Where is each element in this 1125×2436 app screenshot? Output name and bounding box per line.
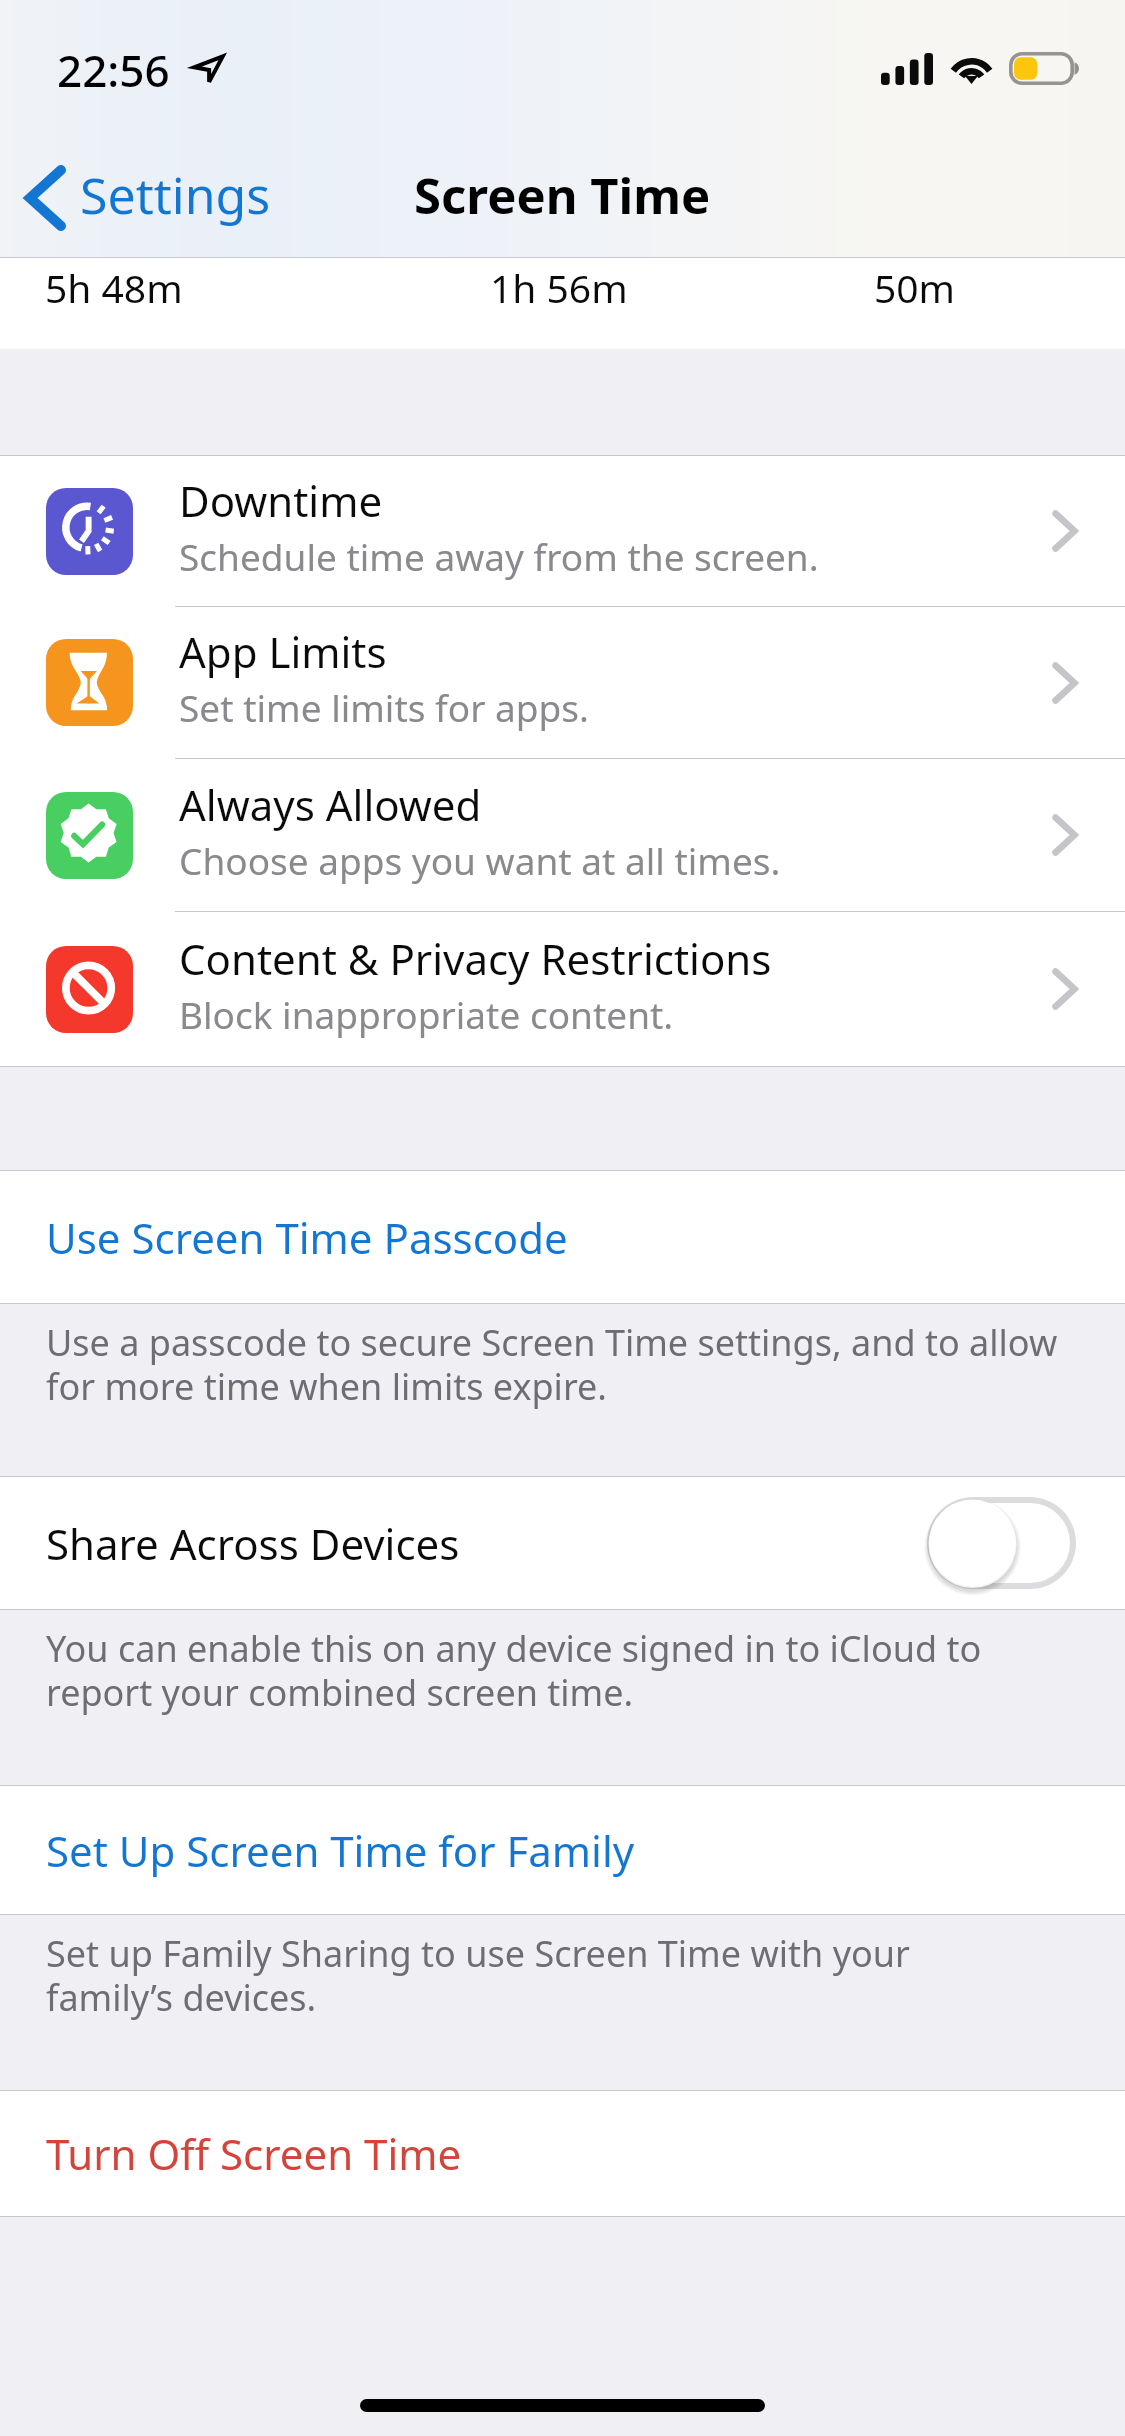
staticText: App Limits — [179, 623, 387, 680]
staticText: Turn Off Screen Time — [46, 2125, 462, 2182]
staticText: Screen Time — [414, 162, 711, 229]
staticText: Set time limits for apps. — [179, 682, 589, 732]
staticText: Choose apps you want at all times. — [179, 835, 781, 885]
staticText: Always Allowed — [179, 776, 482, 833]
button[interactable]: Always Allowed — [0, 759, 1125, 911]
staticText: Block inappropriate content. — [179, 989, 674, 1039]
button[interactable]: Use Screen Time Passcode — [0, 1171, 1125, 1303]
staticText: Share Across Devices — [46, 1515, 460, 1572]
staticText: 5h 48m — [45, 261, 183, 314]
staticText: Use a passcode to secure Screen Time set… — [46, 1318, 1058, 1410]
staticText: 50m — [874, 261, 956, 314]
staticText: 22:56 — [57, 40, 170, 100]
staticText: Use Screen Time Passcode — [46, 1209, 568, 1266]
staticText: You can enable this on any device signed… — [46, 1624, 982, 1716]
button[interactable]: Downtime — [0, 456, 1125, 606]
staticText: Content & Privacy Restrictions — [179, 930, 772, 987]
staticText: Set Up Screen Time for Family — [46, 1822, 635, 1879]
staticText: Downtime — [179, 472, 383, 529]
button[interactable]: Turn Off Screen Time — [0, 2091, 1125, 2216]
button[interactable]: Content & Privacy Restrictions — [0, 912, 1125, 1066]
staticText: Set up Family Sharing to use Screen Time… — [46, 1929, 910, 2021]
button[interactable]: Settings — [0, 132, 271, 258]
other: Location services active — [193, 54, 224, 83]
button[interactable]: App Limits — [0, 607, 1125, 758]
staticText: Settings — [80, 161, 271, 229]
staticText: 1h 56m — [490, 261, 628, 314]
button[interactable]: Set Up Screen Time for Family — [0, 1786, 1125, 1914]
staticText: Schedule time away from the screen. — [179, 531, 819, 581]
button[interactable]: Share Across Devices toggle, off — [927, 1497, 1076, 1589]
button[interactable]: Share Across Devices — [0, 1477, 1125, 1609]
